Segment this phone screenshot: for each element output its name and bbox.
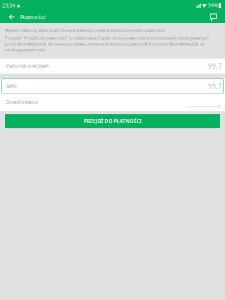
staticText: Rachunek za wrzesień xyxy=(6,63,49,69)
button[interactable]: Back xyxy=(3,11,20,23)
staticText: 99,7 xyxy=(208,62,222,70)
staticText: Dowolna kwota xyxy=(6,99,37,105)
staticText: Saldo xyxy=(6,83,17,89)
button[interactable]: Chat xyxy=(205,11,222,23)
staticText: 34% xyxy=(208,2,218,9)
staticText: 23:34 xyxy=(2,2,15,9)
staticText: Wybierz fakturę, saldo bądź dowolną kwot… xyxy=(5,27,166,33)
button[interactable]: PRZEJDŹ DO PŁATNOŚCI xyxy=(5,114,220,128)
staticText: 99,7 xyxy=(208,82,222,90)
staticText: PRZEJDŹ DO PŁATNOŚCI xyxy=(83,118,141,124)
staticText: Przycisk "Przejdź do płatności" przekier… xyxy=(5,35,209,53)
staticText: Płatności xyxy=(20,13,46,21)
